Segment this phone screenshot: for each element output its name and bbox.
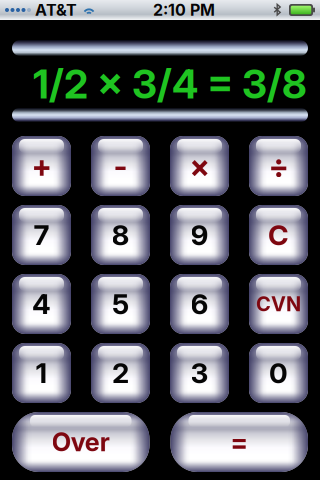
staticText: ×	[189, 147, 209, 184]
button[interactable]: 0	[249, 343, 308, 403]
staticText: Over	[52, 427, 110, 457]
staticText: AT&T	[35, 0, 77, 20]
button[interactable]: 3	[170, 343, 229, 403]
button[interactable]: =	[170, 412, 308, 472]
staticText: 3	[190, 356, 208, 390]
staticText: 8	[111, 218, 129, 252]
button[interactable]: Over	[12, 412, 149, 472]
staticText: 6	[190, 287, 208, 321]
button[interactable]: +	[12, 136, 71, 196]
staticText: ÷	[268, 147, 288, 184]
button[interactable]: 1	[12, 343, 71, 403]
button[interactable]: 2	[91, 343, 150, 403]
button[interactable]: ÷	[249, 136, 308, 196]
button[interactable]: CVN	[249, 274, 308, 334]
staticText: +	[31, 147, 51, 184]
staticText: CVN	[256, 292, 301, 316]
button[interactable]: 9	[170, 205, 229, 265]
staticText: =	[230, 426, 248, 458]
button[interactable]: 5	[91, 274, 150, 334]
staticText: 7	[33, 218, 49, 252]
button[interactable]: 8	[91, 205, 150, 265]
button[interactable]: 4	[12, 274, 71, 334]
staticText: 4	[32, 287, 51, 321]
button[interactable]: 6	[170, 274, 229, 334]
staticText: 0	[269, 356, 288, 390]
staticText: 1	[35, 356, 47, 390]
staticText: 9	[190, 218, 208, 252]
staticText: 1/2 × 3/4 = 3/8	[33, 60, 307, 108]
staticText: 5	[112, 287, 129, 321]
staticText: -	[113, 147, 127, 184]
staticText: 2	[112, 356, 129, 390]
button[interactable]: 7	[12, 205, 71, 265]
button[interactable]: -	[91, 136, 150, 196]
staticText: 2:10 PM	[153, 0, 215, 20]
button[interactable]: C	[249, 205, 308, 265]
button[interactable]: ×	[170, 136, 229, 196]
staticText: C	[268, 218, 289, 252]
